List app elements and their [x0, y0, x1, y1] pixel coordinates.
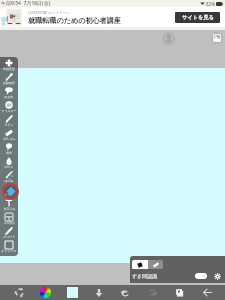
button[interactable]: スポイト: [0, 225, 18, 239]
staticText: コマ割り: [3, 221, 16, 225]
button[interactable]: Layers: [162, 32, 175, 45]
button[interactable]: Redo: [147, 286, 159, 299]
staticText: カラー: [4, 193, 14, 197]
staticText: スポイト: [3, 235, 16, 239]
button[interactable]: Save: [93, 286, 105, 299]
button[interactable]: フィルター: [0, 99, 18, 113]
staticText: 午前9:54 7月16日(金): [1, 0, 51, 7]
button[interactable]: 消しゴム: [0, 127, 18, 141]
button[interactable]: Current colour: [2, 183, 19, 200]
button[interactable]: Pages: [174, 286, 186, 299]
staticText: すき間認識: [132, 273, 158, 279]
button[interactable]: Back: [201, 286, 213, 299]
staticText: 文字入れ: [3, 207, 16, 211]
button[interactable]: Eraser tool: [148, 260, 163, 269]
button[interactable]: Fill tool: [132, 260, 148, 269]
button[interactable]: 移動変形: [0, 57, 18, 71]
staticText: 就職転職のための初心者講座: [28, 16, 121, 25]
staticText: LOOKTONE ルックトーン: [28, 10, 71, 15]
button[interactable]: 吹き出: [0, 85, 18, 99]
button[interactable]: 自動選択: [0, 71, 18, 85]
button[interactable]: カラー: [0, 183, 18, 197]
button[interactable]: 指先: [0, 141, 18, 155]
staticText: サイトを見る: [182, 14, 214, 21]
staticText: 消しゴム: [3, 137, 16, 141]
staticText: フィルター: [1, 109, 17, 113]
button[interactable]: Colour wheel: [39, 286, 51, 299]
button[interactable]: Blend mode: [13, 286, 25, 299]
button[interactable]: キャンバス: [0, 239, 18, 253]
button[interactable]: ぼかし: [0, 155, 18, 169]
button[interactable]: コマ割り: [0, 211, 18, 225]
button[interactable]: Insert image: [211, 32, 223, 44]
staticText: キャンバス: [1, 249, 17, 253]
staticText: ブラシ: [4, 123, 14, 127]
button[interactable]: Settings: [214, 273, 221, 280]
staticText: 82%: [206, 1, 215, 7]
button[interactable]: 文字入れ: [0, 197, 18, 211]
staticText: ゆがみ: [4, 179, 14, 183]
staticText: 自動選択: [3, 81, 15, 85]
staticText: 指先: [6, 151, 12, 155]
button[interactable]: ブラシ: [0, 113, 18, 127]
staticText: ぼかし: [4, 165, 14, 169]
button[interactable]: ゆがみ: [0, 169, 18, 183]
button[interactable]: Undo: [119, 286, 131, 299]
staticText: 移動変形: [3, 67, 15, 71]
button[interactable]: サイトを見る: [175, 12, 220, 23]
button[interactable]: Toggle gap detection: [195, 273, 207, 279]
staticText: 吹き出: [4, 95, 14, 99]
